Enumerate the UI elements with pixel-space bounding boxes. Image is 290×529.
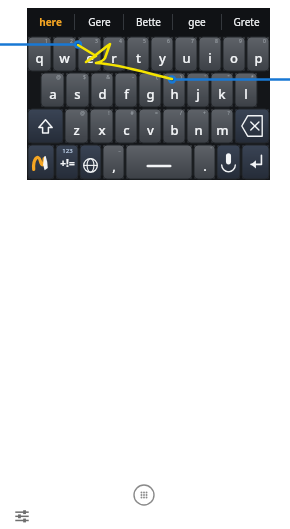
button[interactable]: ) — [163, 73, 185, 107]
staticText: 9 — [239, 38, 242, 45]
staticText: here — [39, 15, 62, 29]
button[interactable]: Gere — [75, 8, 123, 36]
staticText: 8 — [215, 38, 218, 45]
button[interactable]: Enter — [242, 145, 269, 179]
staticText: h — [170, 85, 179, 103]
button[interactable]: 123 — [56, 145, 78, 179]
staticText: 0 — [263, 38, 266, 45]
staticText: e — [86, 49, 94, 67]
staticText: z — [73, 121, 80, 139]
button[interactable]: Gesture typing — [28, 145, 54, 179]
button[interactable]: @ — [65, 109, 88, 143]
staticText: 3 — [95, 38, 98, 45]
button[interactable]: / — [163, 109, 185, 143]
staticText: ' — [210, 146, 212, 153]
button[interactable]: Grete — [222, 8, 270, 36]
staticText: , — [112, 157, 116, 175]
button[interactable]: & — [91, 73, 113, 107]
button[interactable]: 8 — [199, 37, 221, 71]
staticText: # — [130, 110, 134, 117]
button[interactable]: 3 — [78, 37, 101, 71]
button[interactable]: 0 — [247, 37, 269, 71]
staticText: y — [159, 49, 166, 67]
staticText: f — [124, 85, 129, 103]
button[interactable]: - — [115, 73, 137, 107]
staticText: +!= — [60, 156, 75, 170]
staticText: _ — [118, 146, 121, 153]
staticText: w — [59, 49, 70, 67]
staticText: s — [74, 85, 81, 103]
button[interactable]: Settings — [14, 508, 30, 524]
staticText: . — [203, 157, 207, 175]
staticText: k — [218, 85, 226, 103]
staticText: i — [208, 49, 212, 67]
staticText: ' — [204, 74, 206, 81]
staticText: 2 — [70, 38, 73, 45]
button[interactable]: Space — [126, 145, 192, 179]
staticText: o — [230, 49, 238, 67]
button[interactable]: 7 — [175, 37, 197, 71]
staticText: a — [49, 85, 57, 103]
button[interactable]: @ — [41, 73, 64, 107]
button[interactable]: 4 — [103, 37, 125, 71]
staticText: Bette — [136, 15, 161, 29]
button[interactable]: + — [187, 109, 209, 143]
button[interactable]: ' — [194, 145, 215, 179]
button[interactable]: $ — [66, 73, 89, 107]
staticText: d — [98, 85, 107, 103]
button[interactable]: # — [115, 109, 137, 143]
staticText: ) — [180, 74, 182, 81]
button[interactable]: ? — [211, 109, 233, 143]
staticText: @ — [56, 74, 61, 81]
button[interactable]: here — [27, 8, 74, 36]
staticText: 7 — [191, 38, 194, 45]
staticText: / — [180, 110, 182, 117]
staticText: + — [203, 110, 206, 117]
button[interactable]: = — [139, 109, 161, 143]
staticText: r — [111, 49, 117, 67]
staticText: = — [155, 110, 158, 117]
button[interactable]: Voice input — [217, 145, 240, 179]
button[interactable]: ! — [90, 109, 113, 143]
button[interactable]: ( — [139, 73, 161, 107]
staticText: 123 — [62, 147, 73, 155]
button[interactable]: Bette — [124, 8, 172, 36]
button[interactable]: " — [211, 73, 233, 107]
button[interactable]: 6 — [151, 37, 173, 71]
staticText: 1 — [45, 38, 48, 45]
staticText: p — [254, 49, 263, 67]
staticText: gee — [188, 15, 206, 29]
staticText: u — [182, 49, 191, 67]
staticText: l — [244, 85, 248, 103]
button[interactable]: 9 — [223, 37, 245, 71]
staticText: 4 — [119, 38, 122, 45]
button[interactable]: 2 — [53, 37, 76, 71]
staticText: ( — [156, 74, 158, 81]
staticText: ! — [108, 110, 110, 117]
button[interactable]: Shift — [28, 109, 63, 143]
button[interactable]: Language — [80, 145, 101, 179]
button[interactable]: 5 — [127, 37, 149, 71]
button[interactable]: _ — [103, 145, 124, 179]
staticText: @ — [80, 110, 85, 117]
staticText: 5 — [143, 38, 146, 45]
staticText: m — [216, 121, 229, 139]
staticText: v — [147, 121, 154, 139]
staticText: j — [196, 85, 200, 103]
staticText: x — [98, 121, 106, 139]
button[interactable]: 1 — [28, 37, 51, 71]
staticText: q — [35, 49, 44, 67]
staticText: 6 — [167, 38, 170, 45]
button[interactable]: gee — [173, 8, 221, 36]
button[interactable]: Apps — [133, 484, 155, 506]
staticText: $ — [83, 74, 86, 81]
staticText: t — [136, 49, 141, 67]
staticText: n — [194, 121, 203, 139]
staticText: * — [251, 74, 254, 81]
staticText: - — [132, 74, 134, 81]
button[interactable]: * — [235, 73, 257, 107]
staticText: & — [106, 74, 110, 81]
button[interactable]: Backspace — [235, 109, 269, 143]
button[interactable]: ' — [187, 73, 209, 107]
staticText: ? — [227, 110, 230, 117]
